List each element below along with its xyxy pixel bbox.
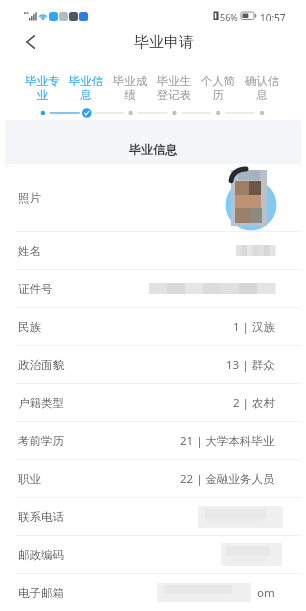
button[interactable]: 照片 [5, 164, 301, 232]
staticText: 个人简历 [196, 74, 240, 103]
button[interactable]: 证件号 [5, 270, 301, 308]
staticText: 13 | 群众 [226, 357, 275, 373]
staticText: 联系电话 [18, 510, 64, 524]
staticText: 确认信息 [240, 74, 284, 103]
staticText: 毕业信息 [64, 74, 108, 103]
button[interactable]: 邮政编码 [5, 536, 301, 574]
button[interactable]: 姓名 [5, 232, 301, 270]
staticText: 政治面貌 [18, 358, 64, 372]
staticText: 电子邮箱 [18, 586, 64, 600]
staticText: 户籍类型 [18, 396, 64, 410]
button[interactable]: 电子邮箱 [5, 574, 301, 611]
button[interactable]: 民族 [5, 308, 301, 346]
button[interactable]: 联系电话 [5, 498, 301, 536]
staticText: om [257, 585, 275, 601]
button[interactable]: 毕业专业 [21, 74, 64, 105]
button[interactable]: 毕业生登记表 [152, 74, 196, 105]
button[interactable]: 政治面貌 [5, 346, 301, 384]
staticText: 56% [220, 11, 238, 21]
staticText: 21 | 大学本科毕业 [180, 433, 275, 449]
staticText: 照片 [18, 191, 41, 205]
button[interactable]: 确认信息 [240, 74, 284, 105]
button[interactable]: 户籍类型 [5, 384, 301, 422]
button[interactable]: 毕业成绩 [108, 74, 152, 105]
staticText: 毕业成绩 [108, 74, 152, 103]
staticText: 毕业专业 [21, 74, 64, 103]
button[interactable]: 考前学历 [5, 422, 301, 460]
staticText: 考前学历 [18, 434, 64, 448]
staticText: 民族 [18, 320, 41, 334]
staticText: 毕业生登记表 [152, 74, 196, 103]
button[interactable]: 毕业信息 [64, 74, 108, 105]
staticText: 1 | 汉族 [233, 319, 275, 335]
button[interactable]: 职业 [5, 460, 301, 498]
staticText: 证件号 [18, 282, 53, 296]
staticText: 2 | 农村 [233, 395, 275, 411]
staticText: 姓名 [18, 244, 41, 258]
staticText: 22 | 金融业务人员 [180, 471, 275, 487]
staticText: 10:57 [260, 11, 286, 21]
staticText: 毕业信息 [129, 142, 177, 157]
staticText: 毕业申请 [134, 33, 194, 52]
staticText: 职业 [18, 472, 41, 486]
staticText: 邮政编码 [18, 548, 64, 562]
button[interactable]: 个人简历 [196, 74, 240, 105]
button[interactable]: Back [17, 29, 43, 55]
